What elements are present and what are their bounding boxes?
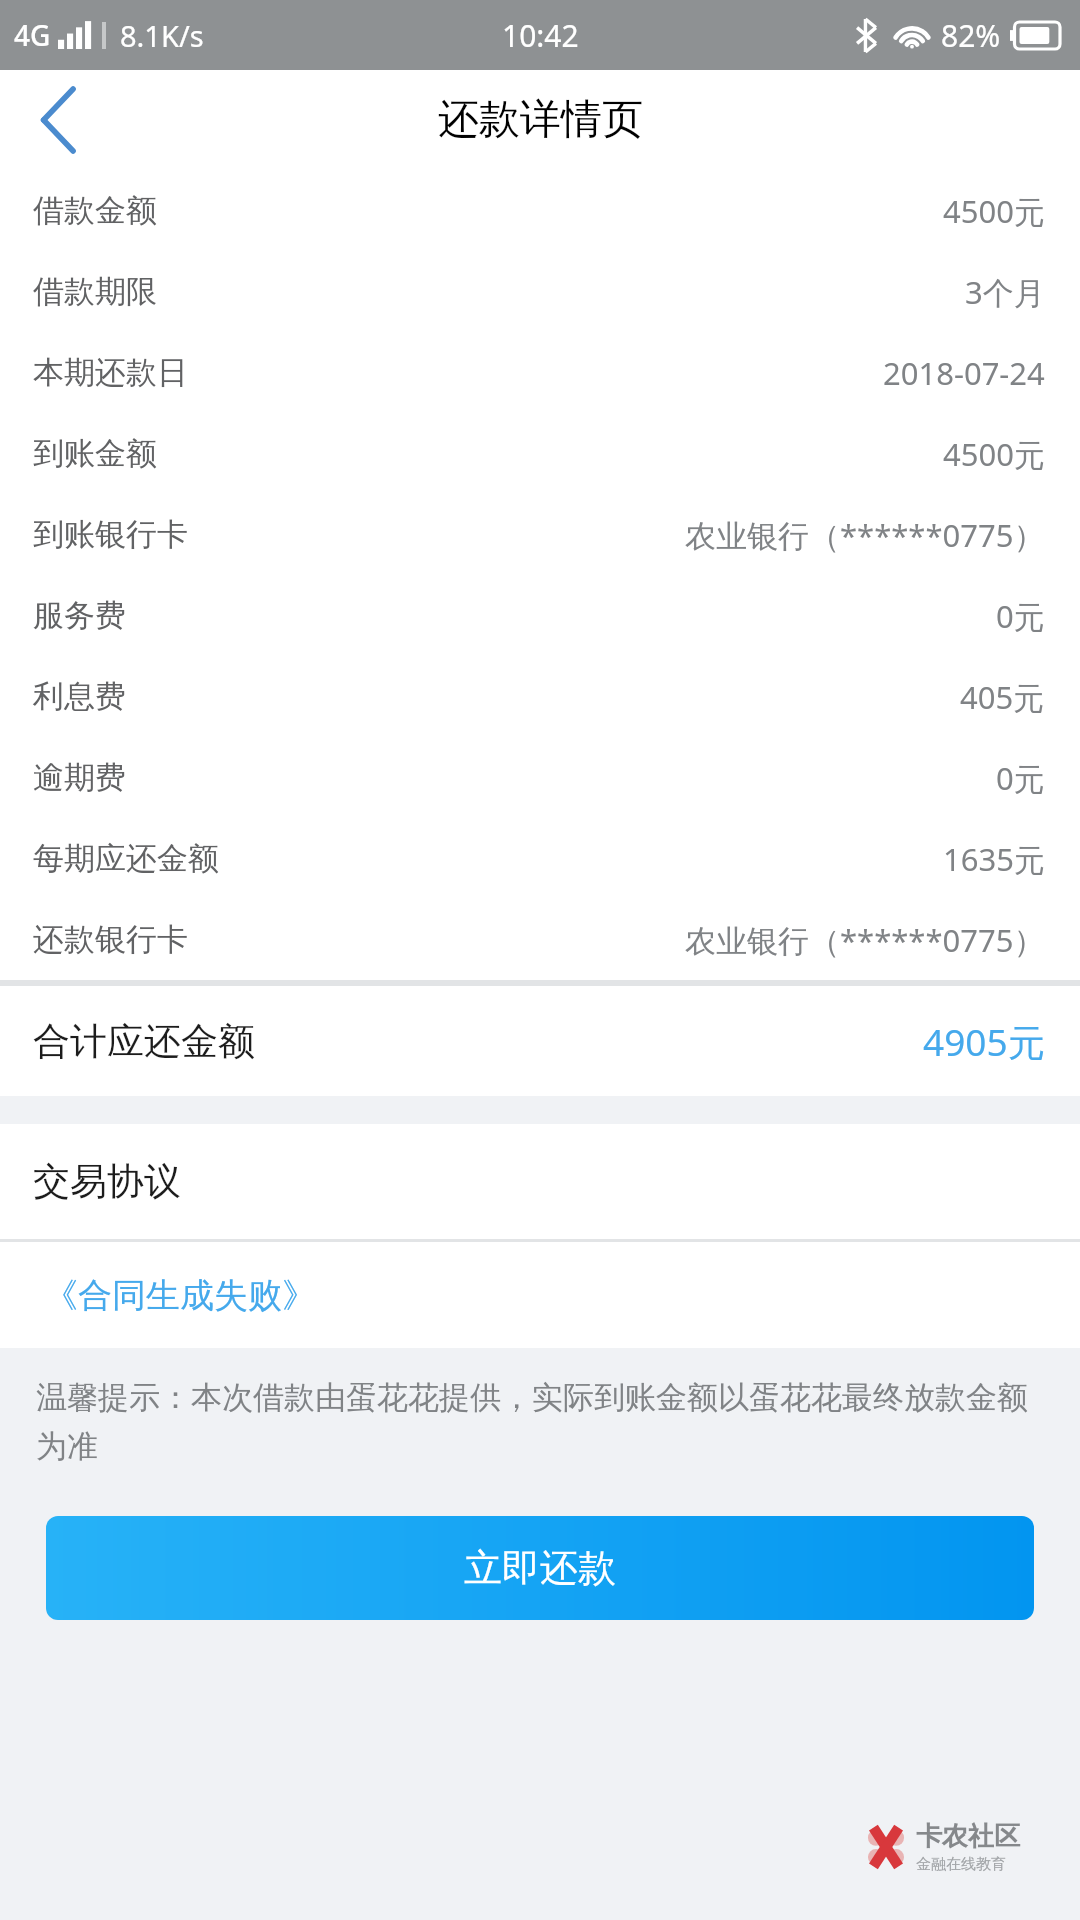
- staticText: 逾期费: [33, 758, 126, 797]
- staticText: 借款期限: [33, 272, 157, 311]
- other: Bluetooth: [856, 19, 877, 52]
- staticText: 0元: [996, 595, 1045, 637]
- staticText: 0元: [996, 757, 1045, 799]
- button[interactable]: 本期还款日: [0, 332, 1080, 413]
- button[interactable]: 到账金额: [0, 413, 1080, 494]
- staticText: 农业银行（******0775）: [685, 919, 1045, 961]
- staticText: 1635元: [943, 838, 1045, 880]
- button[interactable]: 借款金额: [0, 170, 1080, 251]
- staticText: 还款银行卡: [33, 920, 188, 959]
- button[interactable]: Back: [0, 70, 116, 170]
- staticText: 82%: [941, 15, 1001, 56]
- staticText: 到账金额: [33, 434, 157, 473]
- staticText: 金融在线教育: [916, 1855, 1006, 1874]
- staticText: 农业银行（******0775）: [685, 514, 1045, 556]
- staticText: 立即还款: [464, 1544, 616, 1592]
- button[interactable]: 每期应还金额: [0, 818, 1080, 899]
- button[interactable]: 合计应还金额: [0, 986, 1080, 1096]
- staticText: 温馨提示：本次借款由蛋花花提供，实际到账金额以蛋花花最终放款金额为准: [36, 1378, 1034, 1466]
- button[interactable]: 到账银行卡: [0, 494, 1080, 575]
- staticText: 合计应还金额: [33, 1018, 255, 1065]
- staticText: 4500元: [943, 190, 1045, 232]
- button[interactable]: 利息费: [0, 656, 1080, 737]
- button[interactable]: 还款银行卡: [0, 899, 1080, 980]
- staticText: 利息费: [33, 677, 126, 716]
- staticText: 4500元: [943, 433, 1045, 475]
- staticText: 8.1K/s: [120, 16, 204, 55]
- button[interactable]: 《合同生成失败》: [0, 1242, 1080, 1348]
- button[interactable]: 逾期费: [0, 737, 1080, 818]
- button[interactable]: 立即还款: [46, 1516, 1034, 1620]
- staticText: 《合同生成失败》: [44, 1274, 316, 1317]
- button[interactable]: 交易协议: [0, 1124, 1080, 1239]
- staticText: 4G: [14, 16, 51, 54]
- staticText: 服务费: [33, 596, 126, 635]
- staticText: 到账银行卡: [33, 515, 188, 554]
- staticText: 每期应还金额: [33, 839, 219, 878]
- staticText: 405元: [960, 676, 1045, 718]
- other: Wi-Fi: [893, 22, 931, 50]
- staticText: 2018-07-24: [883, 352, 1045, 394]
- other: Battery: [1010, 22, 1060, 49]
- staticText: 卡农社区: [916, 1820, 1020, 1853]
- staticText: 交易协议: [33, 1158, 181, 1205]
- button[interactable]: 服务费: [0, 575, 1080, 656]
- button[interactable]: 借款期限: [0, 251, 1080, 332]
- staticText: 3个月: [965, 271, 1045, 313]
- staticText: 还款详情页: [438, 94, 643, 146]
- staticText: 4905元: [923, 1016, 1045, 1067]
- staticText: 10:42: [502, 15, 579, 56]
- staticText: 借款金额: [33, 191, 157, 230]
- staticText: 本期还款日: [33, 353, 188, 392]
